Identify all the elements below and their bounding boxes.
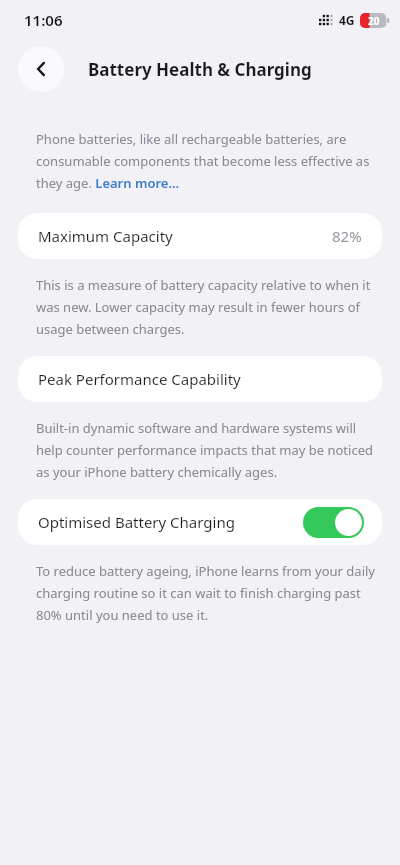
staticText: Peak Performance Capability <box>38 369 241 389</box>
staticText: Built-in dynamic software and hardware s… <box>36 419 376 481</box>
staticText: Phone batteries, like all rechargeable b… <box>36 130 370 192</box>
button[interactable]: Peak Performance Capability <box>18 356 382 402</box>
staticText: Battery Health & Charging <box>88 58 312 81</box>
button[interactable]: Optimised Battery Charging <box>18 499 382 545</box>
staticText: 20 <box>368 14 380 28</box>
staticText: 4G <box>339 12 355 28</box>
button[interactable]: Optimised Battery Charging, on <box>303 507 364 538</box>
staticText: 82% <box>332 226 362 246</box>
button[interactable]: Maximum Capacity <box>18 213 382 259</box>
staticText: 11:06 <box>24 10 63 30</box>
button[interactable]: Back <box>18 46 64 92</box>
staticText: This is a measure of battery capacity re… <box>36 276 376 338</box>
staticText: To reduce battery ageing, iPhone learns … <box>36 562 376 624</box>
staticText: Maximum Capacity <box>38 226 173 246</box>
staticText: Optimised Battery Charging <box>38 512 235 532</box>
